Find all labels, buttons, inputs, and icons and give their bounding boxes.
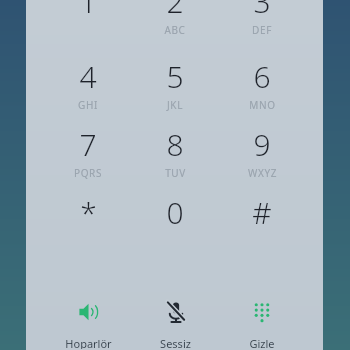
button[interactable]: 1 xyxy=(45,0,131,39)
button[interactable]: 0 xyxy=(132,188,218,250)
button[interactable]: 8 xyxy=(132,120,218,182)
button[interactable]: 7 xyxy=(45,120,131,182)
button[interactable]: 5 xyxy=(132,52,218,114)
staticText: 8 xyxy=(166,124,184,165)
button[interactable]: Gizle xyxy=(216,291,308,349)
staticText: DEF xyxy=(252,23,272,37)
button[interactable]: # xyxy=(219,188,305,250)
staticText: 0 xyxy=(166,192,184,233)
button[interactable]: 6 xyxy=(219,52,305,114)
staticText: MNO xyxy=(249,98,276,112)
staticText: TUV xyxy=(165,166,186,180)
staticText: 2 xyxy=(166,0,184,22)
button[interactable]: Hoparlör xyxy=(42,291,134,349)
button[interactable]: 2 xyxy=(132,0,218,39)
staticText: 1 xyxy=(79,0,97,22)
staticText: ABC xyxy=(164,23,186,37)
staticText: * xyxy=(80,192,97,233)
button[interactable]: * xyxy=(45,188,131,250)
staticText: PQRS xyxy=(74,166,102,180)
staticText: 9 xyxy=(253,124,271,165)
button[interactable]: 4 xyxy=(45,52,131,114)
staticText: Sessiz xyxy=(160,336,191,349)
staticText: 6 xyxy=(253,56,271,97)
staticText: 5 xyxy=(166,56,184,97)
staticText: Hoparlör xyxy=(65,336,112,349)
staticText: JKL xyxy=(167,98,183,112)
staticText: # xyxy=(252,192,272,233)
staticText: 4 xyxy=(79,56,97,97)
staticText: GHI xyxy=(78,98,98,112)
staticText: WXYZ xyxy=(248,166,277,180)
staticText: 3 xyxy=(253,0,271,22)
staticText: 7 xyxy=(79,124,97,165)
button[interactable]: Sessiz xyxy=(129,291,221,349)
button[interactable]: 3 xyxy=(219,0,305,39)
staticText: Gizle xyxy=(249,336,275,349)
button[interactable]: 9 xyxy=(219,120,305,182)
